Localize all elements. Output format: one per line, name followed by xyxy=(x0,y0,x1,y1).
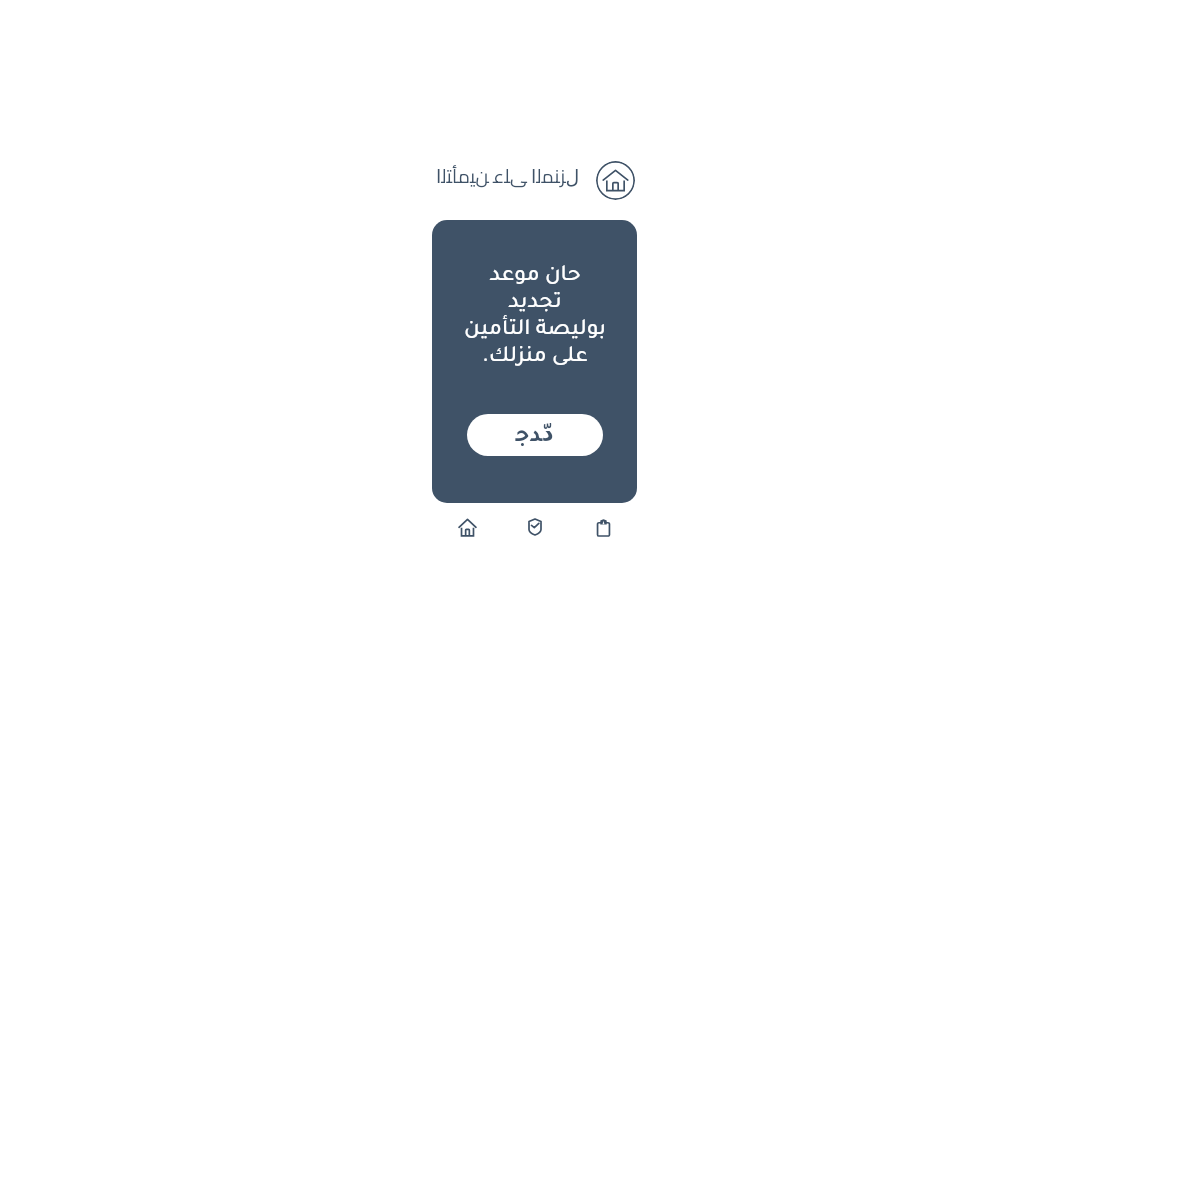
button[interactable]: Documents xyxy=(586,510,620,544)
button[interactable]: Coverage xyxy=(518,510,552,544)
button[interactable]: Home xyxy=(596,161,635,200)
staticText: ‭ﺍﻟﺘﺄﻣﻴﻦ ﻋﻠﻰ ﺍﻟﻤﻨﺰﻝ‬ xyxy=(436,158,580,194)
staticText: حان موعد تجديد بوليصة التأمين على منزلك. xyxy=(450,265,620,369)
button[interactable]: Home xyxy=(450,510,484,544)
button[interactable]: ‭ﺟﺪﺩّ‬ xyxy=(467,414,603,456)
staticText: ‭ﺟﺪﺩّ‬ xyxy=(516,420,554,450)
